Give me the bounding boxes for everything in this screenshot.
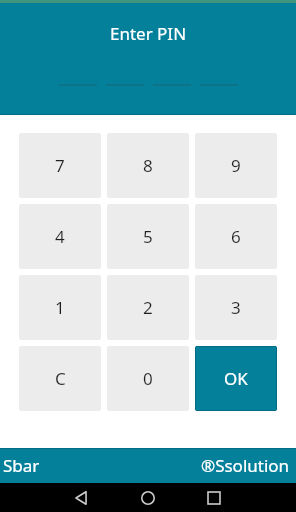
button[interactable]: Recents [196, 483, 232, 512]
staticText: 1 [55, 296, 65, 319]
button[interactable]: OK [195, 346, 277, 411]
staticText: C [55, 367, 66, 390]
button[interactable]: 0 [107, 346, 189, 411]
button[interactable]: Back [63, 483, 99, 512]
staticText: 2 [143, 296, 153, 319]
staticText: ®Ssolution [201, 454, 290, 477]
button[interactable]: 1 [19, 275, 101, 340]
staticText: 3 [231, 296, 241, 319]
staticText: 7 [55, 154, 65, 177]
staticText: OK [224, 367, 248, 390]
button[interactable]: 9 [195, 133, 277, 198]
staticText: 6 [231, 225, 241, 248]
staticText: Sbar [3, 454, 40, 477]
button[interactable]: 3 [195, 275, 277, 340]
staticText: 4 [55, 225, 65, 248]
button[interactable]: 8 [107, 133, 189, 198]
button[interactable]: C [19, 346, 101, 411]
staticText: 8 [143, 154, 153, 177]
button[interactable]: 2 [107, 275, 189, 340]
staticText: 5 [143, 225, 153, 248]
button[interactable]: 7 [19, 133, 101, 198]
button[interactable]: Home [130, 483, 166, 512]
staticText: Enter PIN [0, 22, 296, 45]
staticText: 0 [143, 367, 153, 390]
button[interactable]: 4 [19, 204, 101, 269]
button[interactable]: 6 [195, 204, 277, 269]
button[interactable]: 5 [107, 204, 189, 269]
staticText: 9 [231, 154, 241, 177]
